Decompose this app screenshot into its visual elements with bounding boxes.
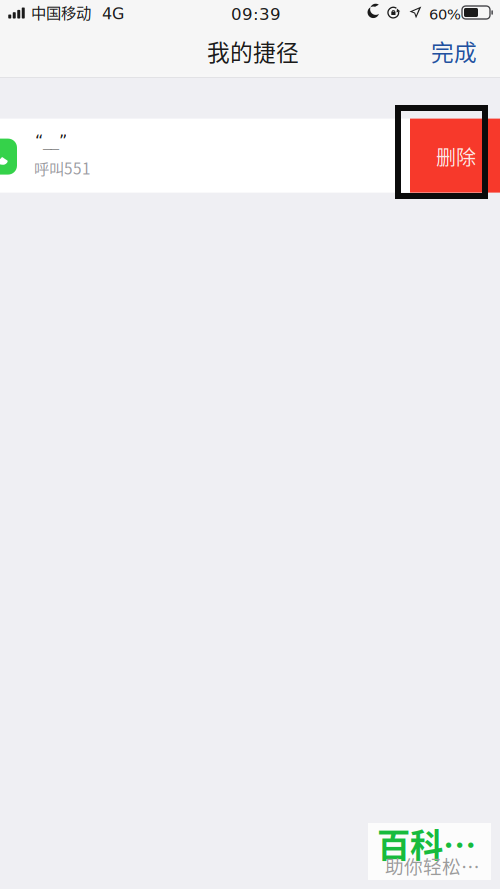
staticText: 09:39	[231, 4, 281, 24]
staticText: 我的捷径	[207, 35, 299, 67]
staticText: “__”	[35, 132, 67, 150]
button[interactable]: 删除	[410, 119, 500, 193]
staticText: 中国移动	[31, 1, 91, 23]
staticText: 4G	[102, 4, 124, 23]
button[interactable]: 完成	[411, 24, 500, 79]
staticText: 助你轻松解决	[385, 852, 481, 879]
staticText: 百科全说	[377, 819, 484, 867]
button[interactable]: “__”	[0, 119, 410, 193]
staticText: 呼叫551	[34, 157, 91, 179]
staticText: 60%	[429, 6, 461, 23]
staticText: 删除	[436, 142, 476, 171]
staticText: 完成	[431, 35, 477, 67]
